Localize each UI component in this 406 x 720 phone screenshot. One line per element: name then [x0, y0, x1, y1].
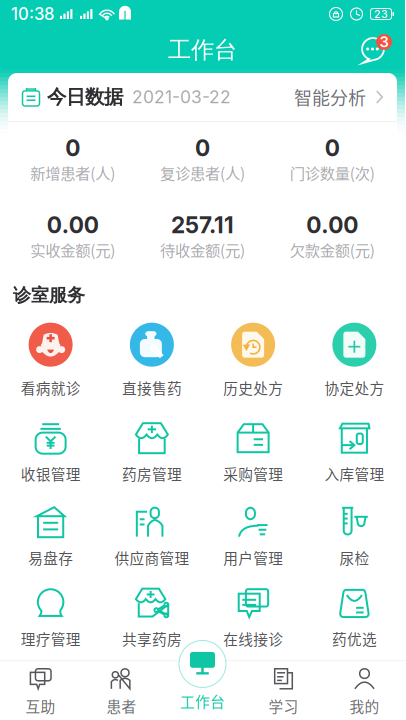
button[interactable]: 入库管理: [304, 422, 405, 482]
staticText: 0: [65, 134, 80, 162]
button[interactable]: 用户管理: [202, 506, 304, 566]
staticText: 供应商管理: [114, 547, 189, 568]
button[interactable]: 历史处方: [202, 323, 304, 396]
staticText: 0: [195, 134, 210, 162]
staticText: 药房管理: [122, 463, 182, 484]
staticText: 工作台: [168, 35, 237, 65]
staticText: 257.11: [171, 211, 234, 239]
staticText: 0: [325, 134, 340, 162]
staticText: 门诊数量(次): [290, 161, 375, 184]
staticText: 2021-03-22: [132, 86, 231, 107]
button[interactable]: 患者: [81, 661, 162, 720]
button[interactable]: 理疗管理: [0, 587, 101, 647]
button[interactable]: Messages: [353, 30, 393, 70]
staticText: 理疗管理: [21, 628, 81, 649]
button[interactable]: 药房管理: [101, 422, 203, 482]
staticText: 看病就诊: [21, 377, 81, 398]
button[interactable]: 尿检: [304, 506, 405, 566]
staticText: 智能分析: [294, 84, 366, 110]
staticText: 共享药房: [122, 628, 182, 649]
staticText: 实收金额(元): [30, 238, 115, 261]
staticText: 易盘存: [28, 547, 73, 568]
staticText: 诊室服务: [13, 284, 85, 307]
button[interactable]: 协定处方: [304, 323, 405, 396]
staticText: 尿检: [339, 547, 369, 568]
button[interactable]: 看病就诊: [0, 323, 101, 396]
staticText: 0.00: [47, 211, 99, 239]
staticText: 用户管理: [223, 547, 283, 568]
button[interactable]: 采购管理: [202, 422, 304, 482]
staticText: 患者: [106, 695, 136, 716]
staticText: 待收金额(元): [160, 238, 245, 261]
button[interactable]: 收银管理: [0, 422, 101, 482]
staticText: 入库管理: [324, 463, 384, 484]
staticText: 互助: [25, 695, 55, 716]
button[interactable]: 学习: [243, 661, 324, 720]
staticText: 欠款金额(元): [290, 238, 375, 261]
staticText: 学习: [268, 695, 298, 716]
button[interactable]: 易盘存: [0, 506, 101, 566]
staticText: 新增患者(人): [30, 161, 115, 184]
button[interactable]: 工作台: [162, 640, 243, 712]
button[interactable]: 互助: [0, 661, 81, 720]
staticText: 我的: [349, 695, 379, 716]
staticText: 今日数据: [47, 85, 123, 109]
staticText: 10:38: [11, 4, 54, 24]
button[interactable]: 今日数据: [8, 73, 397, 121]
staticText: 历史处方: [223, 377, 283, 398]
button[interactable]: 我的: [324, 661, 405, 720]
staticText: 复诊患者(人): [160, 161, 245, 184]
staticText: 0.00: [306, 211, 358, 239]
staticText: 药优选: [332, 628, 377, 649]
button[interactable]: 共享药房: [101, 587, 203, 647]
button[interactable]: 药优选: [304, 587, 405, 647]
button[interactable]: 在线接诊: [202, 587, 304, 647]
staticText: 3: [379, 33, 388, 51]
staticText: 直接售药: [122, 377, 182, 398]
staticText: 在线接诊: [223, 628, 283, 649]
staticText: 采购管理: [223, 463, 283, 484]
staticText: 协定处方: [324, 377, 384, 398]
staticText: 23: [374, 7, 388, 20]
staticText: 收银管理: [21, 463, 81, 484]
staticText: 工作台: [180, 690, 225, 712]
button[interactable]: 直接售药: [101, 323, 203, 396]
button[interactable]: 供应商管理: [101, 506, 203, 566]
